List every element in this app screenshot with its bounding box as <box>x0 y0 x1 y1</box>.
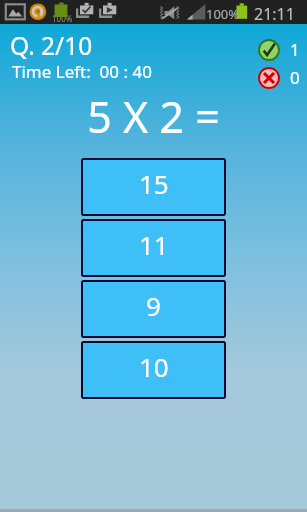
button[interactable]: 15 <box>81 158 226 216</box>
button[interactable]: 10 <box>81 341 226 399</box>
staticText: 11 <box>139 227 169 262</box>
staticText: 5 X 2 = <box>0 87 307 146</box>
button[interactable]: 9 <box>81 280 226 338</box>
staticText: 10 <box>139 349 169 384</box>
staticText: 100% <box>206 5 240 23</box>
other: Correct answers <box>258 39 280 61</box>
staticText: 9 <box>146 288 161 323</box>
other: Wrong answers <box>258 67 280 89</box>
staticText: Time Left: 00 : 40 <box>12 60 152 83</box>
button[interactable]: 11 <box>81 219 226 277</box>
staticText: 1 <box>290 38 300 61</box>
staticText: 0 <box>290 66 300 89</box>
staticText: 21:11 <box>254 3 295 25</box>
staticText: 100% <box>52 13 73 24</box>
staticText: 15 <box>139 166 169 201</box>
staticText: Q. 2/10 <box>10 29 93 62</box>
